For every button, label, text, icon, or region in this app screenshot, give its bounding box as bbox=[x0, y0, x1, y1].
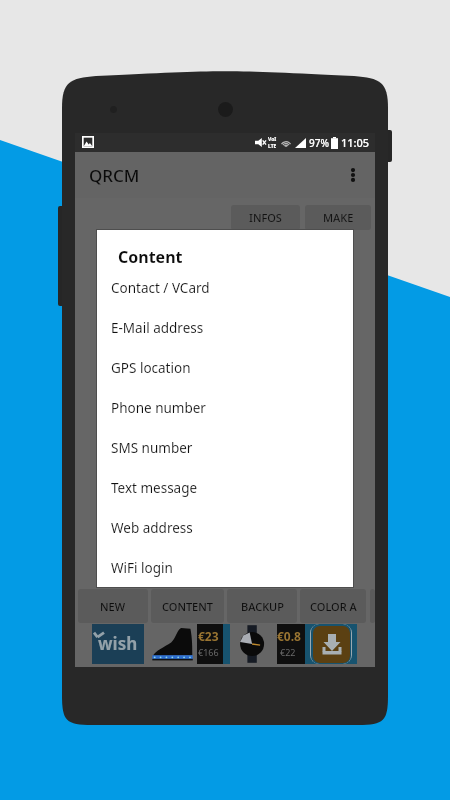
staticText: VoI bbox=[268, 136, 277, 143]
button[interactable]: Web address bbox=[97, 508, 353, 548]
button[interactable]: MAKE bbox=[305, 205, 371, 230]
staticText: Web address bbox=[111, 519, 193, 537]
button[interactable]: SMS number bbox=[97, 428, 353, 468]
button[interactable]: INFOS bbox=[231, 205, 300, 230]
staticText: SMS number bbox=[111, 439, 193, 457]
staticText: wish bbox=[98, 632, 138, 655]
staticText: NEW bbox=[100, 599, 126, 614]
button[interactable]: NEW bbox=[78, 589, 148, 623]
button[interactable]: GPS location bbox=[97, 348, 353, 388]
staticText: E-Mail address bbox=[111, 319, 204, 337]
button[interactable]: More options bbox=[331, 153, 375, 197]
staticText: €166 bbox=[198, 646, 219, 658]
button[interactable]: E-Mail address bbox=[97, 308, 353, 348]
staticText: MAKE bbox=[323, 210, 354, 225]
button[interactable]: CONTENT bbox=[151, 589, 224, 623]
staticText: Phone number bbox=[111, 399, 206, 417]
staticText: WiFi login bbox=[111, 559, 173, 577]
staticText: QRCM bbox=[89, 164, 140, 187]
button[interactable]: BACKUP bbox=[227, 589, 297, 623]
staticText: INFOS bbox=[249, 210, 282, 225]
staticText: Contact / VCard bbox=[111, 279, 210, 297]
staticText: 97% bbox=[309, 136, 329, 150]
staticText: Content bbox=[118, 246, 183, 268]
staticText: €22 bbox=[280, 646, 296, 658]
staticText: COLOR A bbox=[310, 599, 357, 614]
button[interactable]: Contact / VCard bbox=[97, 268, 353, 308]
staticText: CONTENT bbox=[162, 599, 213, 614]
staticText: €23 bbox=[198, 628, 219, 644]
button[interactable]: Phone number bbox=[97, 388, 353, 428]
staticText: €0.8 bbox=[277, 628, 301, 644]
button[interactable]: COLOR A bbox=[300, 589, 366, 623]
staticText: GPS location bbox=[111, 359, 191, 377]
button[interactable]: Install bbox=[313, 626, 350, 663]
staticText: LTE bbox=[268, 143, 277, 150]
staticText: 11:05 bbox=[341, 135, 370, 150]
staticText: Text message bbox=[111, 479, 198, 497]
button[interactable]: WiFi login bbox=[97, 548, 353, 588]
staticText: BACKUP bbox=[241, 599, 284, 614]
button[interactable]: Text message bbox=[97, 468, 353, 508]
